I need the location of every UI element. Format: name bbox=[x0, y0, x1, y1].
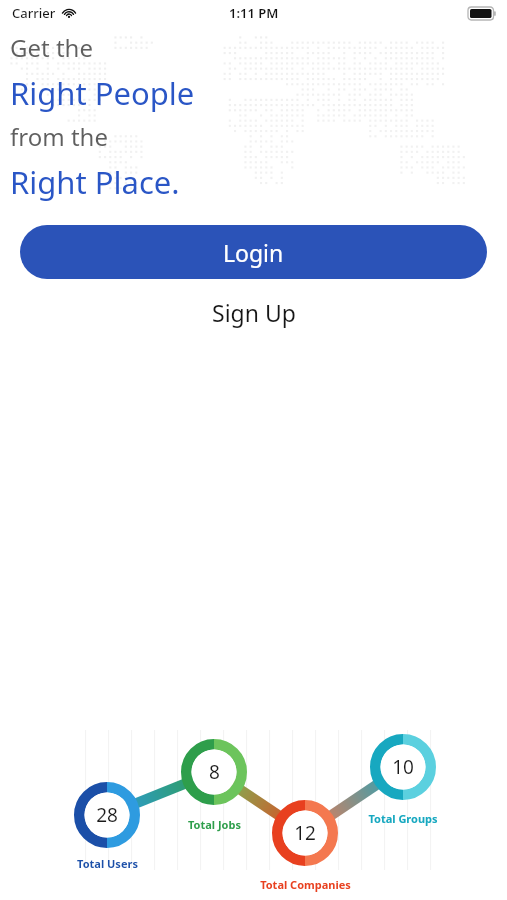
staticText: Carrier bbox=[12, 4, 56, 22]
staticText: 8 bbox=[209, 759, 220, 785]
staticText: Total Groups bbox=[368, 811, 438, 826]
staticText: 1:11 PM bbox=[229, 4, 279, 22]
staticText: 12 bbox=[294, 820, 316, 846]
staticText: Get the bbox=[10, 31, 93, 64]
staticText: 10 bbox=[392, 754, 414, 780]
staticText: from the bbox=[10, 120, 108, 153]
staticText: Total Companies bbox=[260, 877, 351, 892]
staticText: Total Users bbox=[77, 856, 138, 871]
staticText: Right Place. bbox=[10, 161, 180, 203]
button[interactable]: Sign Up bbox=[198, 293, 310, 332]
staticText: Total Jobs bbox=[188, 817, 241, 832]
staticText: Sign Up bbox=[212, 297, 296, 328]
button[interactable]: Login bbox=[20, 225, 487, 279]
staticText: 28 bbox=[96, 802, 118, 828]
staticText: Right People bbox=[10, 72, 195, 114]
staticText: Login bbox=[223, 237, 284, 268]
